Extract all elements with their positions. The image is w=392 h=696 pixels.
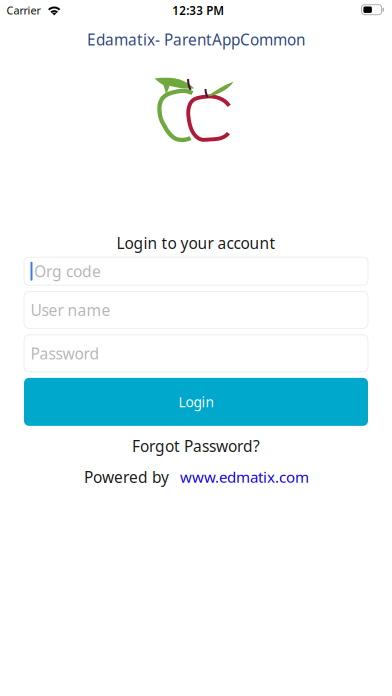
staticText: User name — [30, 299, 110, 320]
staticText: Login — [178, 392, 213, 411]
staticText: www.edmatix.com — [180, 467, 309, 487]
button[interactable]: www.edmatix.com — [180, 467, 309, 487]
staticText: Powered by — [84, 466, 169, 488]
button[interactable]: Login — [24, 378, 368, 426]
staticText: Forgot Password? — [132, 435, 260, 457]
button[interactable]: Forgot Password? — [24, 434, 368, 458]
staticText: Password — [30, 343, 99, 364]
staticText: Org code — [34, 261, 101, 282]
staticText: 12:33 PM — [172, 2, 224, 18]
staticText: Carrier — [7, 3, 41, 17]
staticText: Edamatix- ParentAppCommon — [87, 29, 305, 50]
staticText: Login to your account — [116, 232, 275, 254]
